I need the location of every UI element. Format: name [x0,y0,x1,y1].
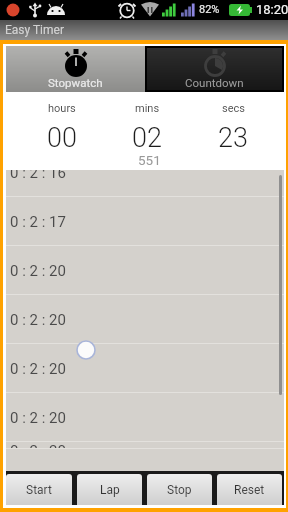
staticText: 0 : 2 : 20 [10,311,66,329]
staticText: Stop [167,483,192,497]
staticText: hours [48,102,76,115]
staticText: 551 [138,152,161,168]
staticText: 0 : 2 : 20 [10,360,66,378]
staticText: 0 : 2 : 20 [10,262,66,280]
button[interactable]: 0 : 2 : 17 [6,197,284,246]
staticText: mins [135,102,160,115]
staticText: 00 [47,122,77,154]
button[interactable]: Countdown [145,46,284,92]
staticText: 0 : 2 : 20 [10,409,66,427]
button[interactable]: 0 : 2 : 20 [6,393,284,442]
button[interactable]: 0 : 2 : 16 [6,170,284,197]
staticText: 02 [132,122,162,154]
staticText: 18:20 [256,2,288,17]
staticText: Stopwatch [48,76,103,89]
button[interactable]: 0 : 2 : 20 [6,295,284,344]
staticText: Lap [100,483,120,497]
staticText: 0 : 2 : 20 [10,442,66,449]
button[interactable]: Lap [77,474,142,505]
staticText: secs [222,102,245,115]
button[interactable]: Start [6,474,72,505]
staticText: 82% [199,3,220,16]
button[interactable]: 0 : 2 : 20 [6,246,284,295]
staticText: Easy Timer [5,23,64,37]
staticText: Start [26,483,52,497]
staticText: 0 : 2 : 17 [10,213,66,231]
button[interactable]: Stopwatch [6,46,145,92]
button[interactable]: 0 : 2 : 20 [6,344,284,393]
button[interactable]: Reset [217,474,282,505]
staticText: Countdown [185,76,244,89]
button[interactable]: Stop [147,474,212,505]
staticText: Reset [234,483,265,497]
button[interactable]: 0 : 2 : 20 [6,442,284,449]
staticText: 0 : 2 : 16 [10,170,66,182]
staticText: 23 [218,122,248,154]
